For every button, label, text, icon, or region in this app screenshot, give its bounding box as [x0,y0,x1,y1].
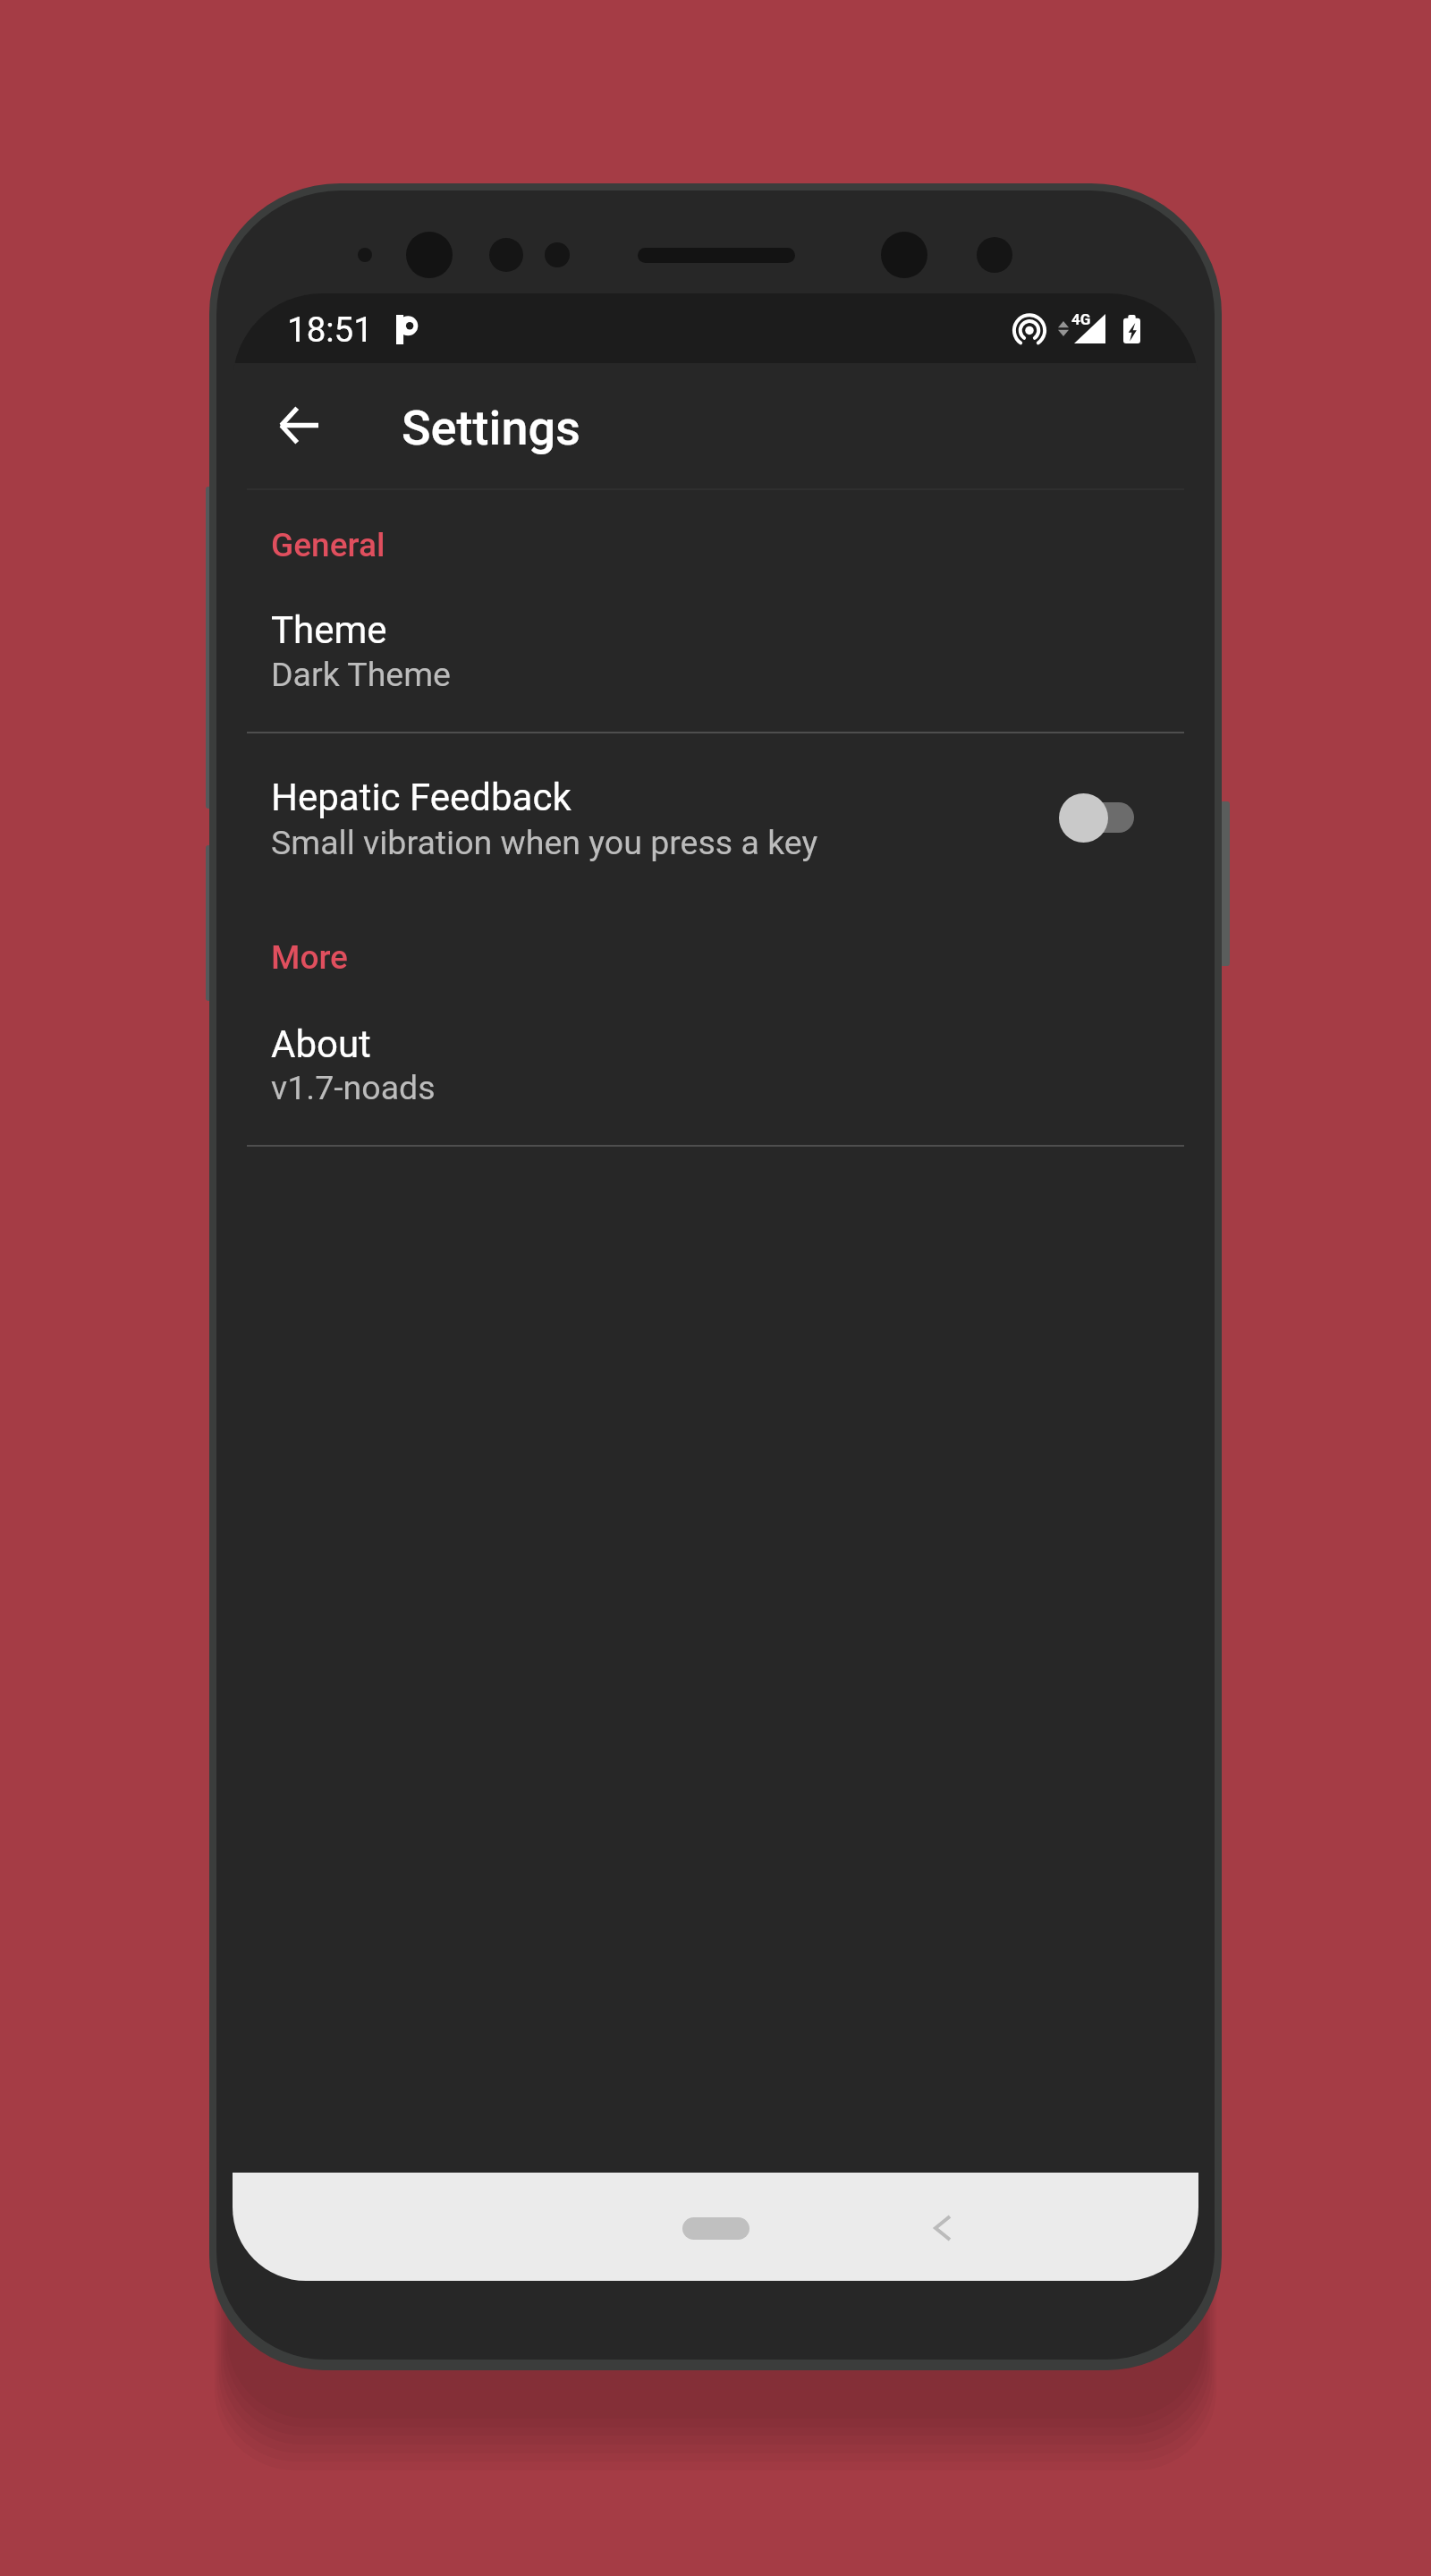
button[interactable]: Home [672,2190,760,2267]
staticText: Small vibration when you press a key [271,823,818,862]
staticText: General [271,526,385,564]
staticText: More [271,938,348,977]
button[interactable]: Theme, Dark Theme [233,589,1198,732]
staticText: Theme [271,608,387,652]
button[interactable]: Haptic feedback toggle [1052,791,1141,844]
staticText: v1.7-noads [271,1068,436,1107]
staticText: Hepatic Feedback [271,775,572,819]
staticText: Dark Theme [271,655,451,694]
button[interactable]: Hepatic Feedback, Small vibration when y… [233,754,1198,911]
button[interactable]: About, v1.7-noads [233,1003,1198,1146]
staticText: Settings [402,400,580,456]
button[interactable]: Back [911,2197,974,2259]
button[interactable]: Back [256,382,342,468]
staticText: 4G [1071,310,1091,328]
staticText: 18:51 [287,309,373,350]
staticText: About [271,1022,371,1066]
